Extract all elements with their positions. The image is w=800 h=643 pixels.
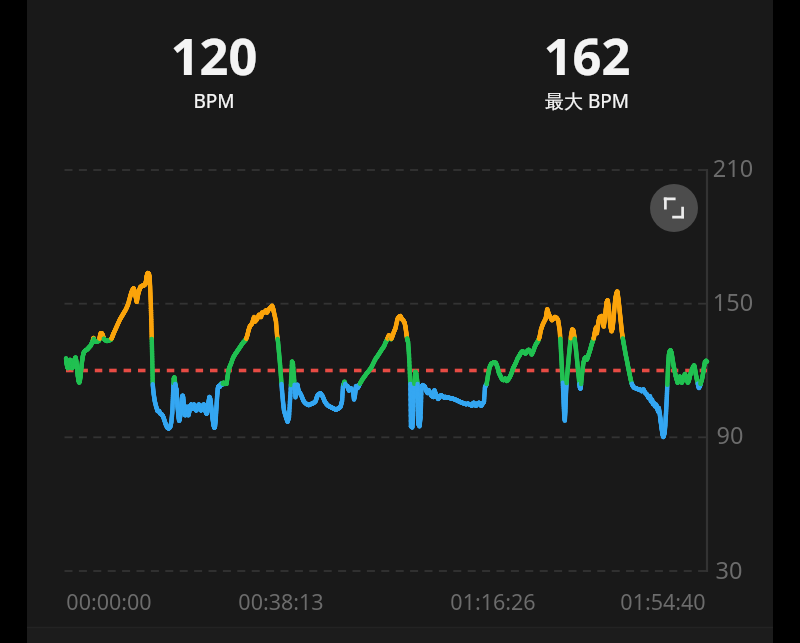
- staticText: 00:38:13: [81, 587, 481, 621]
- staticText: 150: [533, 286, 800, 324]
- staticText: 00:00:00: [0, 587, 309, 621]
- staticText: 162: [387, 21, 787, 102]
- staticText: 01:16:26: [293, 587, 693, 621]
- staticText: 210: [533, 152, 800, 190]
- staticText: 90: [530, 419, 800, 457]
- staticText: 120: [14, 21, 414, 102]
- staticText: 最大 BPM: [387, 88, 787, 118]
- staticText: 01:54:40: [463, 587, 800, 621]
- staticText: BPM: [14, 88, 414, 118]
- staticText: 30: [529, 554, 800, 592]
- button[interactable]: Expand chart to full screen: [650, 184, 698, 232]
